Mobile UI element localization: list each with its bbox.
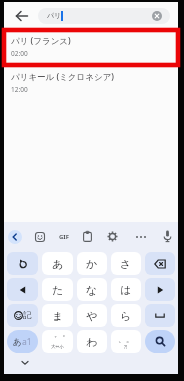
staticText: 記	[23, 310, 32, 321]
button[interactable]	[35, 232, 45, 242]
staticText: パリ (フランス)	[11, 35, 71, 47]
button[interactable]	[7, 252, 38, 275]
button[interactable]	[145, 330, 175, 353]
staticText: ら	[120, 309, 132, 323]
button[interactable]	[152, 11, 162, 21]
button[interactable]: か	[77, 252, 107, 275]
staticText: 02:00	[11, 49, 28, 58]
button[interactable]: 、。	[111, 330, 141, 353]
staticText: か	[86, 257, 98, 271]
staticText: 大⇔小	[51, 344, 64, 350]
staticText: ゛゜	[49, 334, 66, 344]
button[interactable]	[163, 230, 172, 243]
button[interactable]	[145, 252, 175, 275]
button[interactable]	[107, 231, 118, 242]
button[interactable]: た	[42, 278, 73, 301]
button[interactable]: ゛゜	[42, 330, 73, 353]
button[interactable]: ま	[42, 304, 73, 327]
staticText: あ	[13, 337, 22, 348]
button[interactable]: あ	[42, 252, 73, 275]
staticText: パリキール (ミクロネシア)	[11, 71, 115, 83]
button[interactable]	[83, 231, 92, 242]
button[interactable]	[135, 235, 147, 239]
staticText: た	[52, 283, 64, 297]
staticText: a1	[22, 336, 32, 348]
button[interactable]: さ	[111, 252, 141, 275]
staticText: ?!	[124, 344, 128, 350]
button[interactable]	[145, 278, 175, 301]
staticText: な	[86, 283, 98, 297]
staticText: パリ	[47, 11, 62, 20]
button[interactable]: GIF	[56, 232, 72, 242]
staticText: あ	[52, 257, 64, 271]
staticText: わ	[86, 335, 98, 349]
button[interactable]	[8, 230, 22, 244]
staticText: さ	[120, 257, 132, 271]
button[interactable]: パリ	[38, 8, 170, 24]
staticText: GIF	[59, 233, 69, 241]
button[interactable]: パリキール (ミクロネシア)	[4, 68, 178, 98]
button[interactable]: ら	[111, 304, 141, 327]
staticText: ま	[52, 309, 64, 323]
staticText: や	[86, 309, 98, 323]
button[interactable]	[12, 6, 32, 26]
button[interactable]	[145, 304, 175, 327]
button[interactable]: あ	[7, 330, 38, 353]
button[interactable]: 記	[7, 304, 38, 327]
staticText: は	[120, 283, 132, 297]
button[interactable]: や	[77, 304, 107, 327]
button[interactable]: わ	[77, 330, 107, 353]
staticText: 、。	[118, 334, 134, 344]
button[interactable]: パリ (フランス)	[4, 30, 178, 65]
button[interactable]	[7, 278, 38, 301]
button[interactable]: な	[77, 278, 107, 301]
button[interactable]: は	[111, 278, 141, 301]
staticText: 12:00	[11, 85, 28, 94]
